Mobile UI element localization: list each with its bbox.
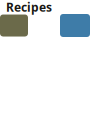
staticText: Recipes (6, 0, 52, 15)
